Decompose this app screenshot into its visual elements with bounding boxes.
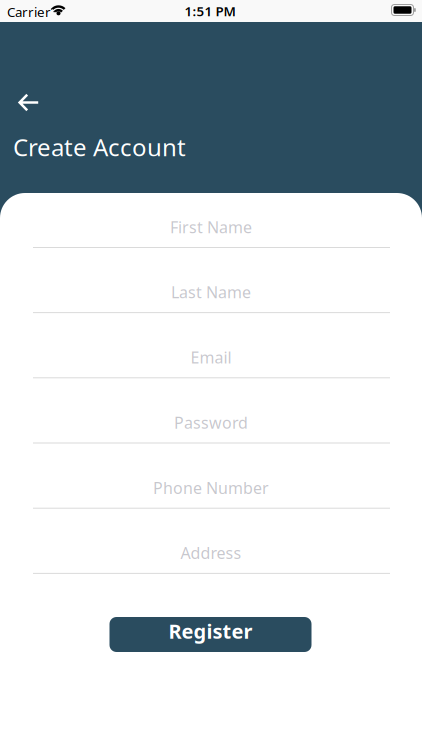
staticText: Email <box>190 347 231 368</box>
staticText: Register <box>168 618 252 644</box>
staticText: Phone Number <box>153 477 269 498</box>
staticText: Address <box>180 542 241 563</box>
staticText: Password <box>174 412 248 433</box>
staticText: Last Name <box>171 281 251 303</box>
button[interactable]: Register <box>109 617 311 652</box>
staticText: 1:51 PM <box>184 2 235 20</box>
staticText: Carrier <box>7 3 51 21</box>
staticText: First Name <box>170 216 252 238</box>
staticText: Create Account <box>13 131 186 163</box>
button[interactable]: Back <box>7 80 51 124</box>
